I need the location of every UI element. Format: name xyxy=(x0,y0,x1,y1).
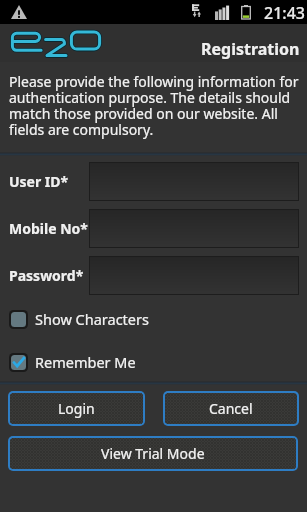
staticText: Login xyxy=(58,399,95,418)
other: e2o logo xyxy=(10,29,103,60)
button[interactable] xyxy=(89,162,299,201)
staticText: Cancel xyxy=(209,399,253,418)
other: Signal strength xyxy=(215,5,230,20)
staticText: Please provide the following information… xyxy=(9,72,301,139)
button[interactable]: Show Characters xyxy=(0,309,307,329)
staticText: Mobile No* xyxy=(9,219,88,238)
button[interactable]: Cancel xyxy=(165,393,297,424)
staticText: 21:43 xyxy=(264,2,305,24)
button[interactable] xyxy=(89,209,299,248)
button[interactable]: View Trial Mode xyxy=(10,438,296,469)
other: Battery xyxy=(241,5,251,19)
staticText: Registration xyxy=(201,38,300,60)
button[interactable] xyxy=(89,256,299,295)
other: EDGE data xyxy=(190,2,203,19)
staticText: Password* xyxy=(9,266,84,285)
staticText: View Trial Mode xyxy=(101,444,205,463)
staticText: Show Characters xyxy=(35,309,149,329)
staticText: User ID* xyxy=(9,172,69,191)
staticText: Remember Me xyxy=(35,352,136,372)
button[interactable]: Login xyxy=(10,393,143,424)
button[interactable]: Remember Me xyxy=(0,352,307,372)
